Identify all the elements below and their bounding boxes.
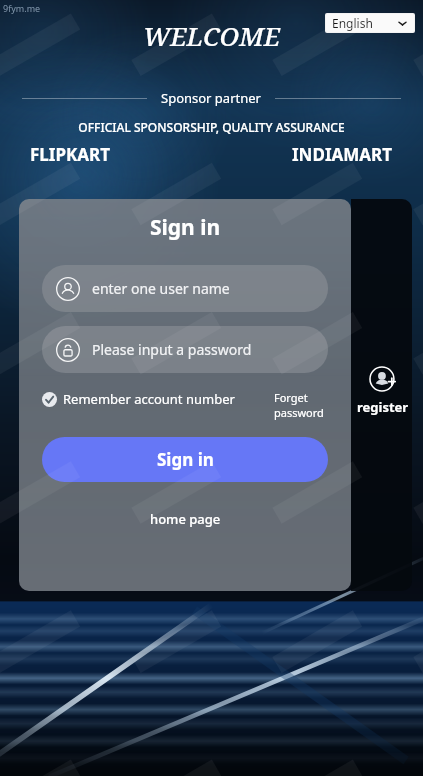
- staticText: enter one user name: [92, 279, 230, 298]
- button[interactable]: Remember account number: [42, 390, 266, 408]
- button[interactable]: enter one user name: [42, 265, 328, 312]
- button[interactable]: register: [352, 366, 414, 416]
- staticText: Sign in: [42, 213, 328, 242]
- staticText: 9fym.me: [3, 2, 41, 14]
- button[interactable]: English: [325, 13, 415, 33]
- staticText: register: [357, 398, 409, 416]
- button[interactable]: Sign in: [42, 437, 328, 482]
- button[interactable]: home page: [42, 510, 328, 528]
- staticText: OFFICIAL SPONSORSHIP, QUALITY ASSURANCE: [0, 119, 423, 135]
- staticText: home page: [150, 510, 221, 528]
- staticText: English: [332, 15, 373, 31]
- staticText: Remember account number: [63, 390, 235, 408]
- staticText: Sponsor partner: [161, 89, 261, 107]
- button[interactable]: FLIPKART: [30, 143, 111, 166]
- button[interactable]: Please input a password: [42, 326, 328, 373]
- staticText: Sign in: [157, 448, 214, 471]
- staticText: WELCOME: [0, 18, 423, 53]
- button[interactable]: INDIAMART: [292, 143, 393, 166]
- staticText: Please input a password: [92, 340, 252, 359]
- button[interactable]: Forget password: [274, 390, 328, 420]
